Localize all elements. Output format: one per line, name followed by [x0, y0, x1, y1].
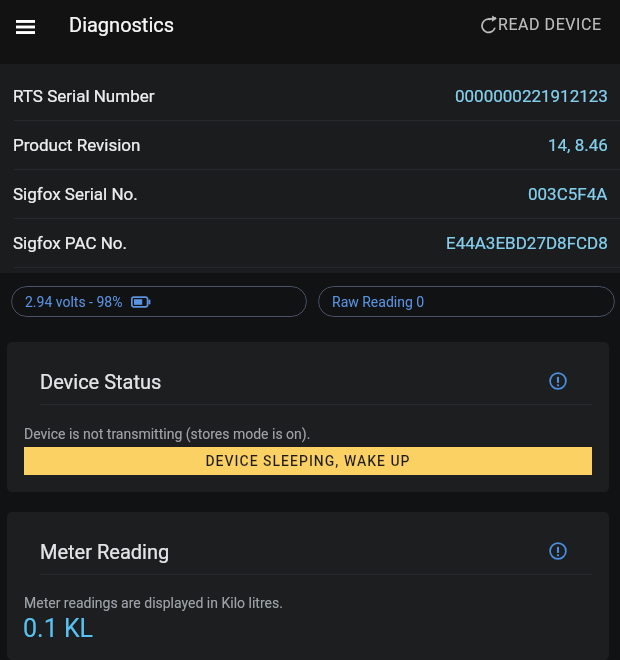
staticText: Sigfox PAC No. [13, 233, 128, 253]
button[interactable]: Information [545, 538, 571, 564]
button[interactable]: Open navigation menu [1, 3, 49, 51]
staticText: Meter Reading [40, 540, 170, 563]
staticText: READ DEVICE [498, 15, 602, 34]
staticText: Sigfox Serial No. [13, 184, 138, 204]
button[interactable]: Raw Reading 0 [318, 286, 615, 317]
staticText: 003C5F4A [528, 184, 608, 204]
staticText: DEVICE SLEEPING, WAKE UP [205, 453, 411, 469]
staticText: 0000000221912123 [455, 86, 608, 106]
button[interactable]: RTS Serial Number [0, 72, 620, 120]
button[interactable]: READ DEVICE [479, 9, 604, 40]
button[interactable]: Sigfox Serial No. [0, 170, 620, 218]
staticText: RTS Serial Number [13, 86, 155, 106]
button[interactable]: Information [545, 368, 571, 394]
staticText: 0.1 KL [23, 614, 94, 643]
staticText: Device is not transmitting (stores mode … [24, 426, 311, 442]
button[interactable]: Product Revision [0, 121, 620, 169]
button[interactable]: DEVICE SLEEPING, WAKE UP [24, 447, 592, 475]
staticText: 2.94 volts - 98% [25, 294, 123, 310]
staticText: Diagnostics [69, 13, 175, 36]
staticText: Device Status [40, 370, 162, 393]
staticText: Raw Reading 0 [332, 294, 425, 310]
staticText: Meter readings are displayed in Kilo lit… [24, 595, 283, 611]
staticText: 14, 8.46 [548, 135, 608, 155]
button[interactable]: 2.94 volts - 98% [11, 286, 307, 317]
button[interactable]: Sigfox PAC No. [0, 219, 620, 267]
staticText: Product Revision [13, 135, 141, 155]
staticText: E44A3EBD27D8FCD8 [446, 233, 608, 253]
